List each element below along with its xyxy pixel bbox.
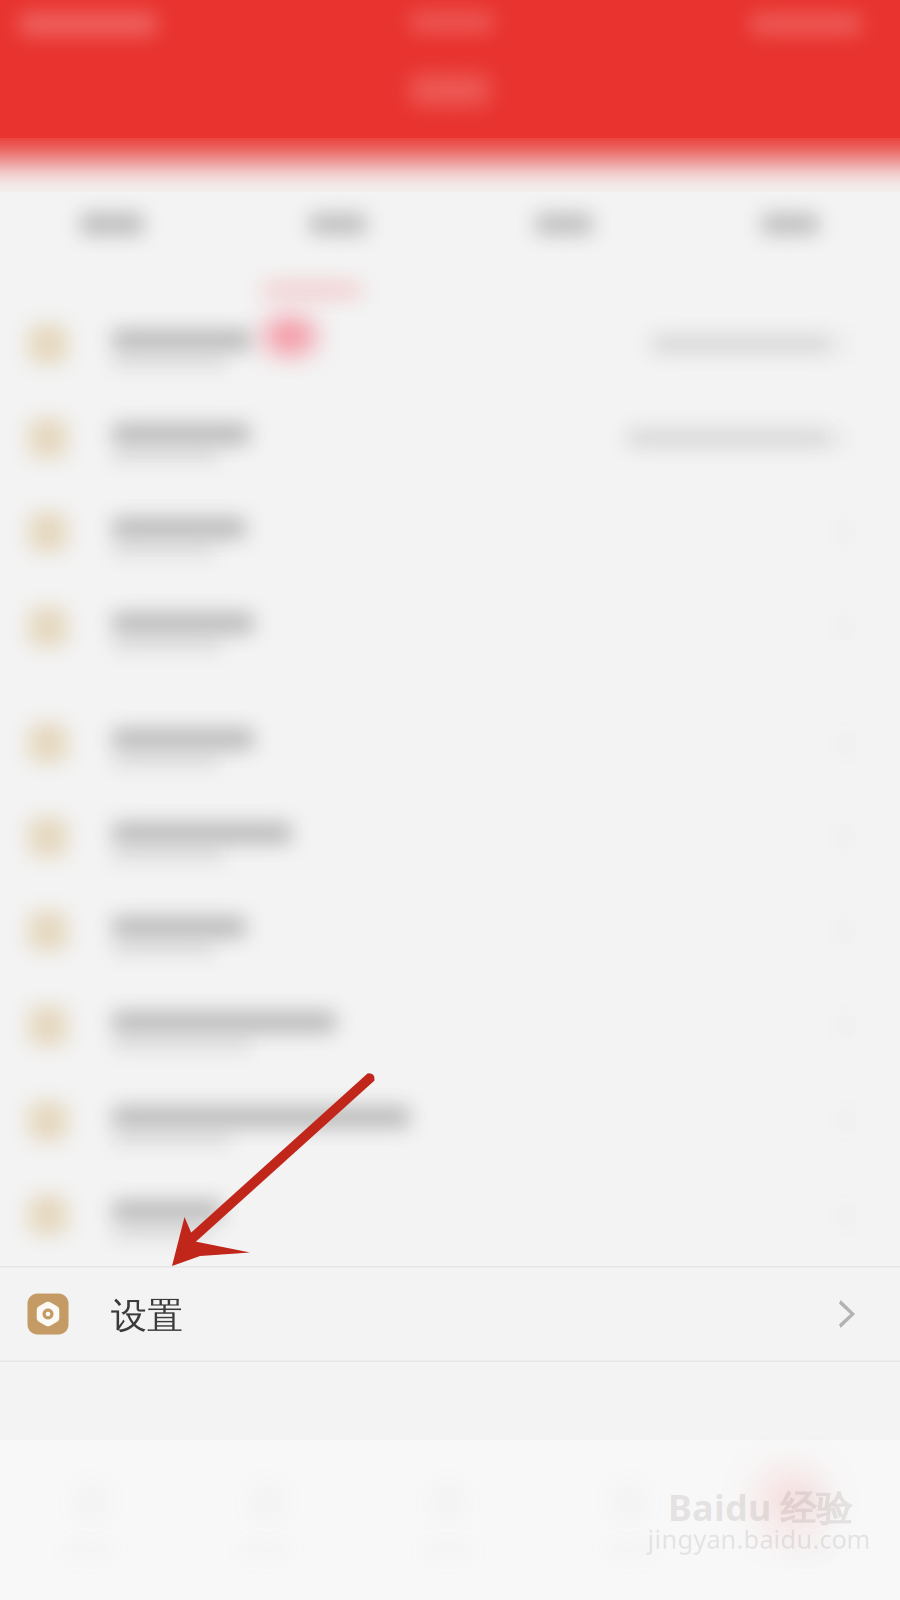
staticText: Baidu 经验 [668, 1483, 852, 1531]
staticText: 设置 [111, 1294, 183, 1338]
staticText: jingyan.baidu.com [647, 1522, 870, 1556]
button[interactable]: 设置 [0, 1266, 900, 1362]
